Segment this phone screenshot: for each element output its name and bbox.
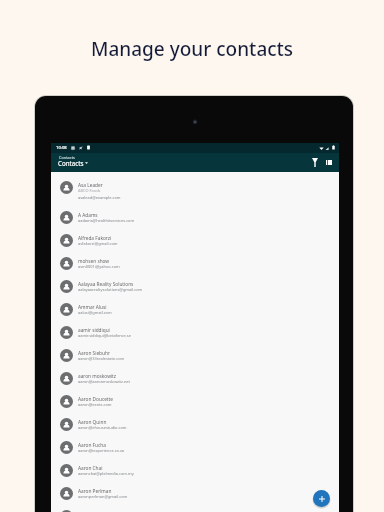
staticText: aalusi@gmail.com (78, 310, 112, 315)
button[interactable]: mohsen show (51, 252, 339, 275)
staticText: asm0001i@yahoo.com (78, 264, 120, 269)
staticText: Aalayaa Reality Solutions (78, 281, 134, 287)
button[interactable]: A Adams (51, 206, 339, 229)
button[interactable]: Aaron Quinn (51, 413, 339, 436)
staticText: asfakorzi@gmail.com (78, 241, 118, 246)
staticText: aaron@33realestate.com (78, 356, 125, 361)
button[interactable]: Aalayaa Reality Solutions (51, 275, 339, 298)
staticText: aaron@ehousestudio.com (78, 425, 127, 430)
staticText: Aaron Doucette (78, 396, 113, 402)
button[interactable]: Filter contacts (304, 153, 325, 172)
staticText: asalead@example.com (78, 195, 121, 200)
staticText: aaron@iexperience.co.za (78, 448, 125, 453)
button[interactable]: Create contact (313, 490, 330, 507)
button[interactable]: aaron moskowitz (51, 367, 339, 390)
staticText: Aaron Fucha (78, 442, 106, 448)
staticText: A Adams (78, 212, 98, 218)
button[interactable]: aamir siddiqui (51, 321, 339, 344)
staticText: Manage your contacts (91, 36, 294, 62)
staticText: Contacts (59, 155, 75, 160)
staticText: aaronperlman@gmail.com (78, 494, 128, 499)
button[interactable]: Alfreda Fakorzi (51, 229, 339, 252)
button[interactable]: Aaron Rodriguez (51, 505, 339, 512)
staticText: aadams@healthitservices.com (78, 218, 135, 223)
staticText: Aaron Quinn (78, 419, 107, 425)
staticText: mohsen show (78, 258, 110, 264)
staticText: aaron moskowitz (78, 373, 117, 379)
staticText: ABCO Foods (78, 188, 101, 193)
staticText: aaron@aaronmoskowitz.net (78, 379, 130, 384)
staticText: aamir siddiqui (78, 327, 110, 333)
button[interactable]: Aaron Fucha (51, 436, 339, 459)
staticText: aamir.siddiqui@betafence.se (78, 333, 131, 338)
staticText: Aaron Siebuhr (78, 350, 110, 356)
staticText: Contacts (58, 159, 84, 167)
staticText: aaronchai@plxlmedia.com.my (78, 471, 134, 476)
button[interactable]: Aaron Siebuhr (51, 344, 339, 367)
staticText: Aaron Chai (78, 465, 103, 471)
button[interactable]: Change view (318, 153, 339, 172)
staticText: aaron@eeots.com (78, 402, 112, 407)
staticText: aalayaarealtysolutions@gmail.com (78, 287, 143, 292)
button[interactable]: Aaron Perlman (51, 482, 339, 505)
staticText: Ammar Alusi (78, 304, 107, 310)
staticText: 10:08 (56, 145, 67, 151)
staticText: Alfreda Fakorzi (78, 235, 112, 241)
button[interactable]: Aaron Chai (51, 459, 339, 482)
button[interactable]: Aaron Doucette (51, 390, 339, 413)
button[interactable]: Ammar Alusi (51, 298, 339, 321)
button[interactable]: Asa Leader (51, 172, 339, 202)
staticText: Aaron Perlman (78, 488, 112, 494)
staticText: Asa Leader (78, 182, 103, 188)
